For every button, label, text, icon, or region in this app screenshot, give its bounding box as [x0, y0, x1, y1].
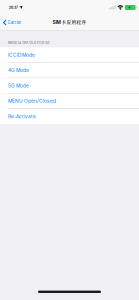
button[interactable]: ICCID Mode	[0, 47, 139, 62]
button[interactable]: Re-Activate	[0, 109, 139, 124]
button[interactable]: Carrier	[0, 15, 26, 30]
button[interactable]: 4G Mode	[0, 63, 139, 78]
staticText: MKSD ULTRA V5.0 FOR 5G	[8, 41, 49, 45]
staticText: ICCID Mode	[8, 52, 35, 58]
staticText: 20:37	[9, 5, 18, 9]
staticText: Carrier	[8, 20, 22, 25]
staticText: SIM 卡应用程序	[52, 19, 86, 25]
staticText: Re-Activate	[8, 114, 36, 119]
button[interactable]: 5G Mode	[0, 78, 139, 93]
button[interactable]: MENU Open/Closed	[0, 94, 139, 109]
staticText: 4G Mode	[8, 67, 29, 73]
staticText: MENU Open/Closed	[8, 98, 56, 104]
staticText: 5G Mode	[8, 83, 29, 89]
